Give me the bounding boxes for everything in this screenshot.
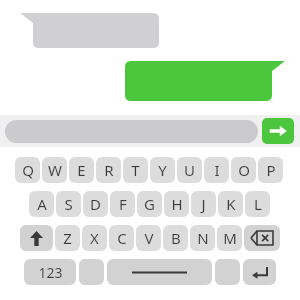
button[interactable]: Q [15, 157, 40, 183]
button[interactable]: I [204, 157, 229, 183]
button[interactable]: Enter [243, 259, 276, 285]
staticText: 123 [38, 263, 63, 282]
staticText: G [144, 194, 155, 214]
staticText: C [117, 228, 127, 248]
button[interactable]: L [245, 191, 270, 217]
button[interactable]: Z [55, 225, 80, 251]
staticText: A [37, 194, 47, 214]
button[interactable]: J [191, 191, 216, 217]
staticText: U [184, 160, 195, 180]
staticText: S [64, 194, 73, 214]
button[interactable]: V [136, 225, 161, 251]
button[interactable]: Key [215, 259, 240, 285]
button[interactable]: X [82, 225, 107, 251]
button[interactable]: O [231, 157, 256, 183]
button[interactable]: Space [107, 259, 212, 285]
button[interactable]: Send [262, 118, 294, 144]
button[interactable] [20, 13, 159, 48]
staticText: R [104, 160, 114, 180]
staticText: J [201, 194, 206, 214]
button[interactable]: S [56, 191, 81, 217]
button[interactable]: D [83, 191, 108, 217]
staticText: P [266, 160, 276, 180]
button[interactable]: Key [79, 259, 104, 285]
staticText: K [226, 194, 236, 214]
button[interactable]: F [110, 191, 135, 217]
staticText: B [171, 228, 181, 248]
staticText: I [214, 160, 220, 180]
button[interactable]: 123 [24, 259, 76, 285]
button[interactable]: Shift [20, 225, 53, 251]
button[interactable]: K [218, 191, 243, 217]
button[interactable]: W [42, 157, 67, 183]
staticText: X [90, 228, 99, 248]
staticText: W [48, 160, 62, 180]
staticText: D [90, 194, 101, 214]
button[interactable]: R [96, 157, 121, 183]
button[interactable]: T [123, 157, 148, 183]
staticText: N [197, 228, 209, 248]
staticText: Y [158, 160, 167, 180]
button[interactable]: H [164, 191, 189, 217]
staticText: T [131, 160, 140, 180]
button[interactable] [125, 61, 285, 101]
staticText: M [223, 228, 237, 248]
staticText: V [144, 228, 154, 248]
staticText: F [119, 194, 127, 214]
button[interactable] [5, 120, 258, 143]
staticText: H [171, 194, 183, 214]
button[interactable]: C [109, 225, 134, 251]
staticText: E [77, 160, 86, 180]
button[interactable]: E [69, 157, 94, 183]
button[interactable]: P [258, 157, 283, 183]
button[interactable]: Backspace [244, 225, 280, 251]
button[interactable]: G [137, 191, 162, 217]
button[interactable]: A [29, 191, 54, 217]
button[interactable]: B [163, 225, 188, 251]
button[interactable]: M [217, 225, 242, 251]
button[interactable]: Y [150, 157, 175, 183]
button[interactable]: N [190, 225, 215, 251]
button[interactable]: U [177, 157, 202, 183]
staticText: O [238, 160, 250, 180]
staticText: L [254, 194, 262, 214]
staticText: Z [63, 228, 72, 248]
staticText: Q [22, 160, 34, 180]
